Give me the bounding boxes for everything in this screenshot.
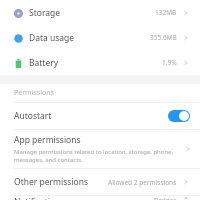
staticText: Data usage [29, 32, 75, 44]
other: Open [184, 145, 192, 153]
button[interactable]: Data usage [0, 25, 200, 50]
button[interactable]: Other permissions [0, 169, 200, 195]
staticText: Badges [154, 196, 177, 200]
button[interactable]: Autostart toggle [168, 110, 190, 122]
staticText: Allowed 2 permissions [108, 178, 177, 187]
other: Open [182, 59, 190, 67]
button[interactable]: Notifications [0, 196, 200, 200]
staticText: Notifications [14, 196, 65, 200]
button[interactable]: Storage [0, 0, 200, 25]
other: Open [182, 178, 190, 186]
other: Open [182, 34, 190, 42]
staticText: Other permissions [14, 176, 88, 188]
staticText: Storage [29, 7, 61, 19]
staticText: 355.6MB [150, 33, 177, 42]
staticText: 1.9% [162, 58, 177, 67]
staticText: Manage permissions related to location, … [14, 148, 174, 164]
staticText: Permissions [14, 88, 54, 98]
button[interactable]: App permissions [0, 130, 200, 168]
staticText: App permissions [14, 134, 81, 146]
staticText: 132MB [155, 8, 177, 17]
button[interactable]: Battery [0, 50, 200, 75]
staticText: Autostart [14, 110, 52, 122]
button[interactable]: Autostart [0, 103, 200, 129]
other: Open [182, 9, 190, 17]
staticText: Battery [29, 57, 59, 69]
other: Open [182, 196, 190, 200]
